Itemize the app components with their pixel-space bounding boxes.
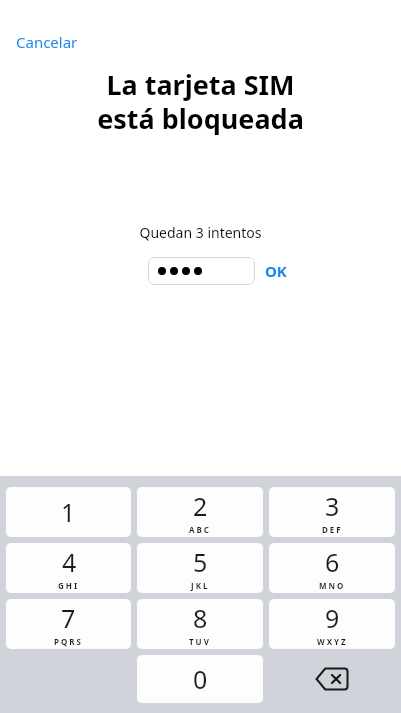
button[interactable]: 0 <box>137 655 263 703</box>
button[interactable]: 1 <box>6 487 131 537</box>
staticText: JKL <box>191 580 210 591</box>
staticText: TUV <box>189 636 211 647</box>
button[interactable]: Cancelar <box>12 30 82 54</box>
staticText: La tarjeta SIM está bloqueada <box>24 66 377 137</box>
staticText: 5 <box>193 545 208 579</box>
staticText: 7 <box>61 601 76 635</box>
button[interactable]: 3 <box>269 487 395 537</box>
staticText: 4 <box>62 545 77 579</box>
staticText: WXYZ <box>317 636 348 647</box>
staticText: PQRS <box>54 636 83 647</box>
staticText: 9 <box>325 601 340 635</box>
button[interactable]: 9 <box>269 599 395 649</box>
staticText: ABC <box>189 524 211 535</box>
button[interactable]: OK <box>255 257 297 285</box>
staticText: 2 <box>193 489 208 523</box>
button[interactable]: 2 <box>137 487 263 537</box>
staticText: 6 <box>325 545 340 579</box>
button[interactable]: 5 <box>137 543 263 593</box>
staticText: 3 <box>325 489 340 523</box>
button[interactable]: Borrar <box>269 655 395 703</box>
button[interactable]: 6 <box>269 543 395 593</box>
staticText: Cancelar <box>16 32 78 52</box>
button[interactable]: 4 <box>6 543 131 593</box>
staticText: 8 <box>193 601 208 635</box>
staticText: OK <box>265 261 287 281</box>
button[interactable] <box>148 257 255 285</box>
staticText: Quedan 3 intentos <box>0 223 401 242</box>
button[interactable]: 7 <box>6 599 131 649</box>
staticText: 0 <box>193 662 208 696</box>
staticText: GHI <box>58 580 80 591</box>
button[interactable]: 8 <box>137 599 263 649</box>
staticText: 1 <box>61 495 76 529</box>
staticText: DEF <box>322 524 343 535</box>
staticText: MNO <box>319 580 346 591</box>
